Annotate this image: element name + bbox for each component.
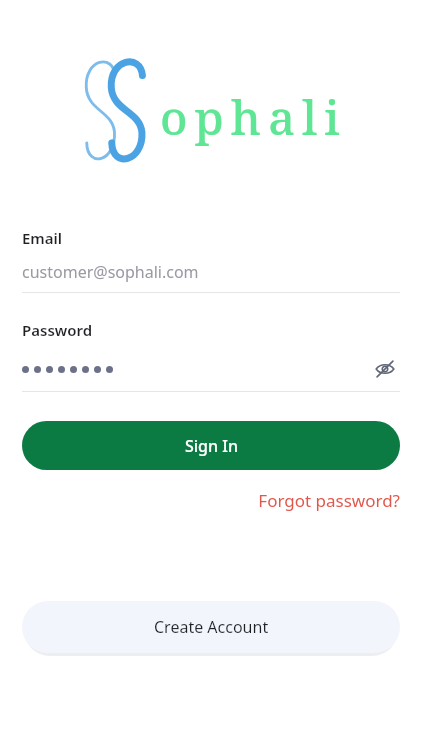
staticText: Forgot password?	[258, 489, 400, 512]
button[interactable]: Show password	[370, 354, 400, 384]
button[interactable]: customer@sophali.com	[22, 261, 400, 283]
button[interactable]	[22, 366, 370, 373]
button[interactable]: Forgot password?	[258, 487, 400, 514]
staticText: Create Account	[154, 616, 269, 638]
staticText: customer@sophali.com	[22, 261, 199, 283]
staticText: ophali	[160, 85, 347, 149]
staticText: Email	[22, 228, 63, 248]
button[interactable]: Create Account	[22, 601, 400, 653]
staticText: Sign In	[185, 435, 238, 457]
button[interactable]: Sign In	[22, 421, 400, 470]
staticText: Password	[22, 320, 93, 340]
